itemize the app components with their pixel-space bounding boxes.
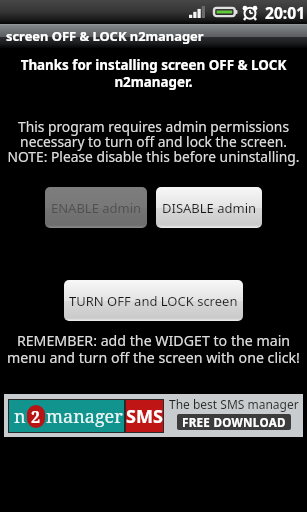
staticText: This program requires admin permissions … — [6, 117, 301, 166]
staticText: REMEMBER: add the WIDGET to the main men… — [2, 331, 305, 367]
staticText: DISABLE admin — [162, 199, 257, 217]
button[interactable]: ENABLE admin — [45, 187, 147, 228]
staticText: ENABLE admin — [51, 199, 142, 217]
staticText: 20:01 — [265, 2, 306, 23]
staticText: Thanks for installing screen OFF & LOCK … — [13, 56, 294, 90]
button[interactable]: DISABLE admin — [156, 187, 262, 228]
staticText: TURN OFF and LOCK screen — [69, 292, 238, 310]
staticText: screen OFF & LOCK n2manager — [6, 27, 204, 45]
staticText: 2 — [31, 406, 41, 428]
staticText: FREE DOWNLOAD — [182, 415, 286, 429]
button[interactable]: TURN OFF and LOCK screen — [64, 280, 243, 321]
staticText: The best SMS manager — [169, 396, 299, 412]
staticText: manager — [46, 404, 123, 429]
staticText: SMS — [126, 404, 163, 429]
button[interactable]: n — [4, 394, 303, 437]
staticText: n — [14, 404, 26, 429]
